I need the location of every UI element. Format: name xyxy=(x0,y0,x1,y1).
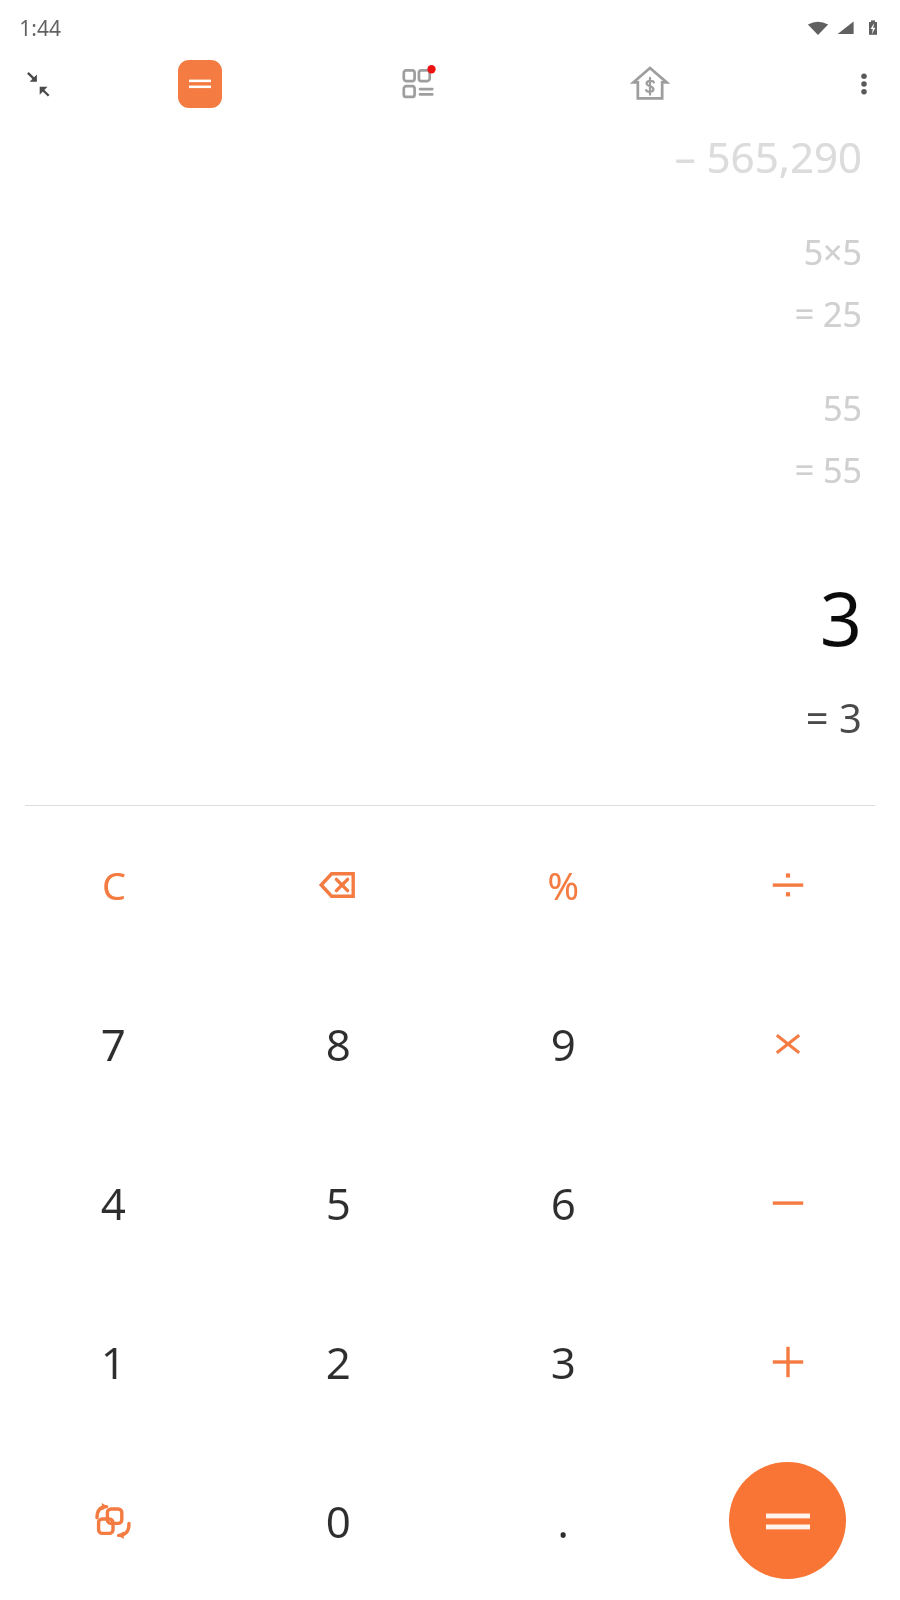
staticText: 5 xyxy=(325,1173,351,1233)
staticText: 55 xyxy=(823,385,862,431)
button[interactable]: Minus xyxy=(740,1155,836,1251)
staticText: 1:44 xyxy=(19,14,61,43)
button[interactable]: 3 xyxy=(513,1312,613,1412)
staticText: 3 xyxy=(819,567,862,668)
button[interactable]: 4 xyxy=(63,1153,163,1253)
button[interactable]: C xyxy=(63,835,163,935)
button[interactable]: 8 xyxy=(288,994,388,1094)
button[interactable]: . xyxy=(515,1473,611,1569)
button[interactable]: 5 xyxy=(288,1153,388,1253)
button[interactable]: 9 xyxy=(513,994,613,1094)
button[interactable]: Dashboard xyxy=(390,56,450,112)
button[interactable]: % xyxy=(513,835,613,935)
button[interactable]: Convert xyxy=(70,1478,156,1564)
button[interactable]: Multiply xyxy=(740,996,836,1092)
button[interactable]: Equals xyxy=(729,1462,846,1579)
staticText: 4 xyxy=(100,1173,126,1233)
button[interactable]: 7 xyxy=(63,994,163,1094)
staticText: 8 xyxy=(325,1014,351,1074)
staticText: = 55 xyxy=(794,447,862,493)
button[interactable]: 0 xyxy=(290,1473,386,1569)
button[interactable]: Backspace xyxy=(290,837,386,933)
staticText: 0 xyxy=(325,1491,351,1551)
button[interactable]: Collapse xyxy=(10,56,66,112)
button[interactable]: 6 xyxy=(513,1153,613,1253)
staticText: 6 xyxy=(550,1173,576,1233)
staticText: 3 xyxy=(550,1332,576,1392)
staticText: . xyxy=(557,1491,569,1551)
button[interactable]: 2 xyxy=(288,1312,388,1412)
staticText: = 3 xyxy=(805,690,862,744)
button[interactable]: Calculator xyxy=(178,60,222,108)
button[interactable]: 1 xyxy=(63,1312,163,1412)
staticText: 7 xyxy=(100,1014,126,1074)
button[interactable]: Mortgage xyxy=(620,56,680,112)
button[interactable]: Plus xyxy=(740,1314,836,1410)
staticText: 9 xyxy=(550,1014,576,1074)
staticText: – 565,290 xyxy=(674,128,862,185)
button[interactable]: More options xyxy=(836,56,892,112)
staticText: 2 xyxy=(325,1332,351,1392)
staticText: 5×5 xyxy=(803,229,862,275)
staticText: = 25 xyxy=(794,291,862,337)
staticText: 1 xyxy=(100,1332,126,1392)
staticText: C xyxy=(101,859,126,911)
staticText: % xyxy=(547,859,579,911)
button[interactable]: Divide xyxy=(740,837,836,933)
